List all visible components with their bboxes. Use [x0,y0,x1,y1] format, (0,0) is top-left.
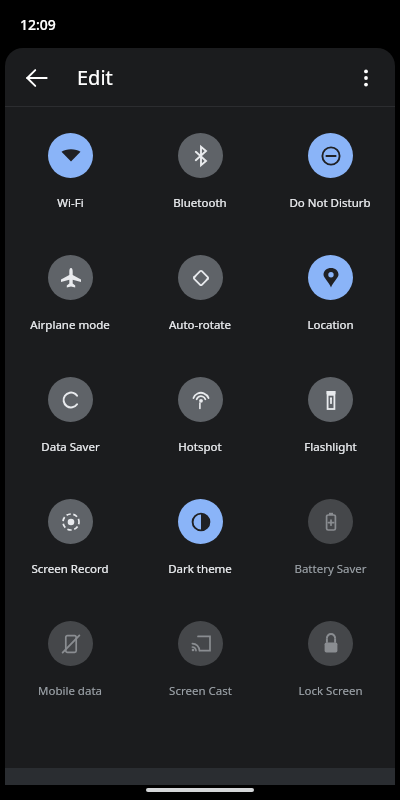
button[interactable]: Dark theme [141,499,259,577]
staticText: Auto-rotate [169,317,231,333]
button[interactable]: Screen Cast [141,621,259,699]
button[interactable]: Auto-rotate [141,255,259,333]
staticText: Hotspot [178,439,222,455]
staticText: Wi-Fi [57,195,84,211]
button[interactable]: Screen Record [11,499,129,577]
staticText: Dark theme [168,561,232,577]
staticText: Flashlight [304,439,357,455]
button[interactable]: Back [13,54,61,102]
staticText: Screen Cast [169,683,232,699]
button[interactable]: Lock Screen [271,621,389,699]
staticText: 12:09 [20,15,56,34]
button[interactable]: Bluetooth [141,133,259,211]
button[interactable]: Battery Saver [271,499,389,577]
staticText: Lock Screen [298,683,363,699]
staticText: Location [307,317,354,333]
staticText: Airplane mode [30,317,110,333]
staticText: Battery Saver [294,561,367,577]
button[interactable]: Do Not Disturb [271,133,389,211]
staticText: Screen Record [31,561,109,577]
staticText: Do Not Disturb [289,195,371,211]
staticText: Bluetooth [173,195,227,211]
button[interactable]: Hotspot [141,377,259,455]
button[interactable]: Wi-Fi [11,133,129,211]
staticText: Edit [77,64,113,91]
button[interactable]: Location [271,255,389,333]
staticText: Mobile data [38,683,102,699]
button[interactable]: Airplane mode [11,255,129,333]
button[interactable]: Flashlight [271,377,389,455]
staticText: Data Saver [41,439,100,455]
button[interactable]: More options [342,54,390,102]
button[interactable]: Data Saver [11,377,129,455]
button[interactable]: Mobile data [11,621,129,699]
